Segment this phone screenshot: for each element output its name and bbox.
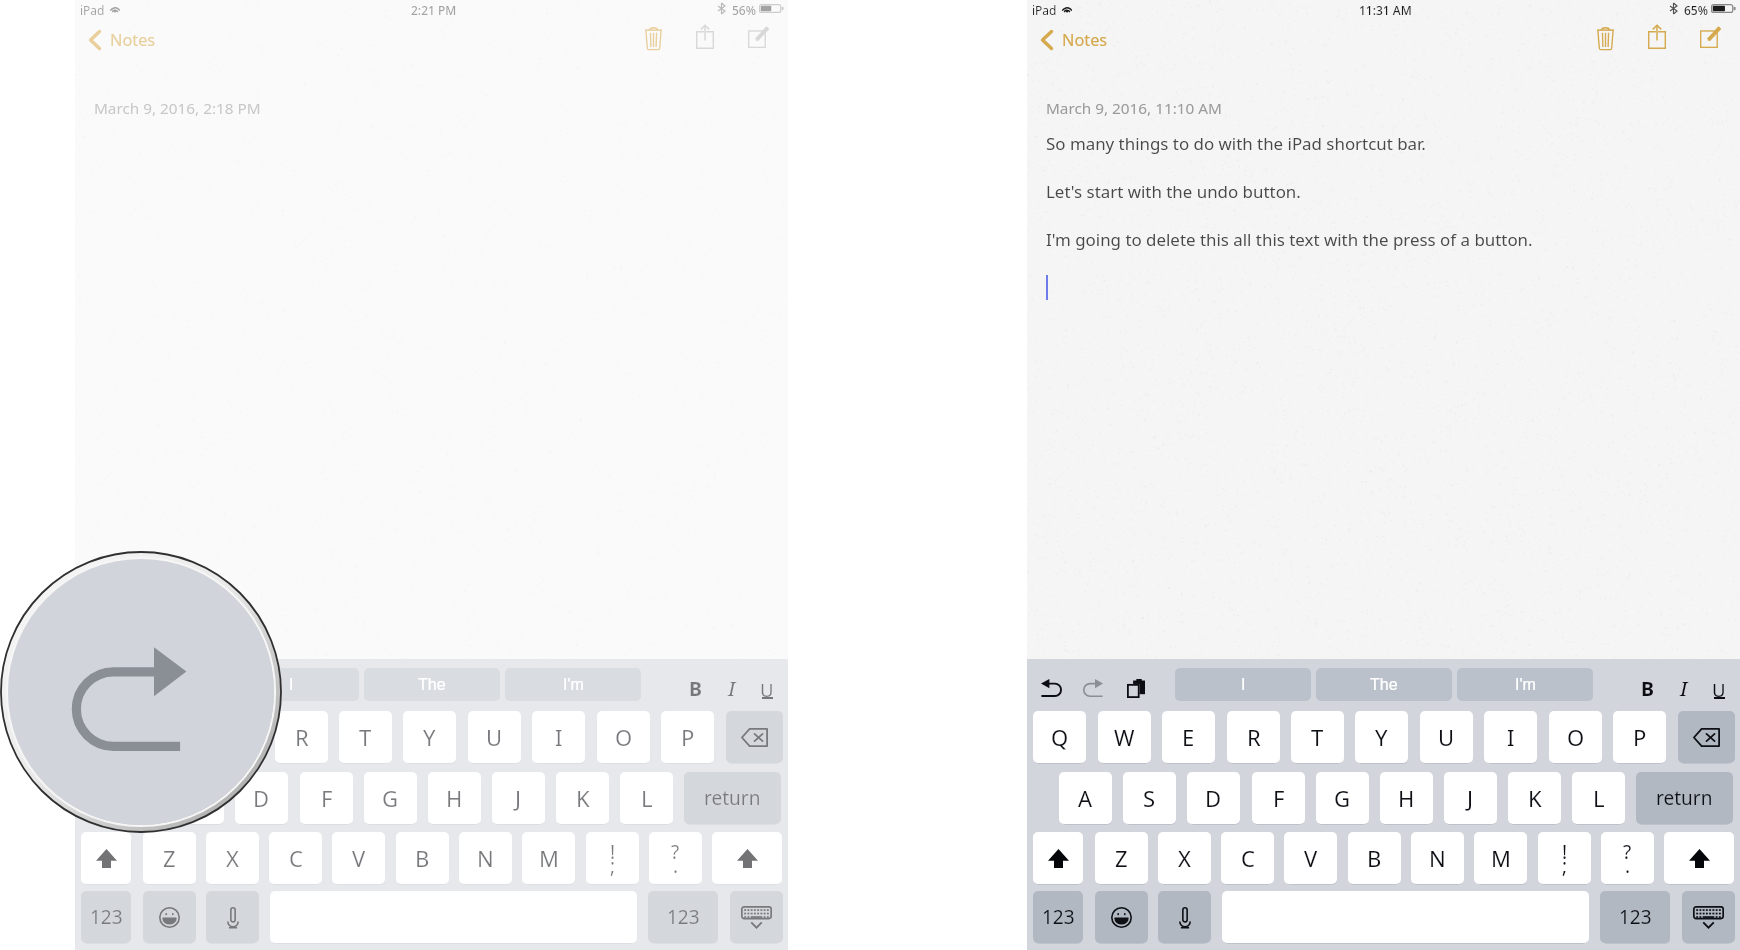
button[interactable]: V — [332, 832, 385, 884]
button[interactable]: E — [210, 711, 263, 763]
button[interactable]: U — [468, 711, 521, 763]
button[interactable]: Shift — [1664, 832, 1734, 884]
button[interactable]: T — [1291, 711, 1344, 763]
button[interactable]: Shift — [81, 832, 131, 884]
button[interactable]: I — [1664, 668, 1704, 708]
button[interactable]: Dictate — [206, 891, 259, 943]
button[interactable]: return — [1636, 772, 1733, 824]
button[interactable]: X — [206, 832, 259, 884]
button[interactable]: E — [1162, 711, 1215, 763]
button[interactable]: Dictate — [1158, 891, 1211, 943]
button[interactable]: ? — [1601, 832, 1654, 884]
button[interactable]: ! — [586, 832, 639, 884]
button[interactable]: Redo — [1073, 668, 1113, 708]
button[interactable]: Paste — [1116, 668, 1156, 708]
button[interactable]: W — [146, 711, 199, 763]
button[interactable]: F — [300, 772, 353, 824]
button[interactable]: L — [1572, 772, 1625, 824]
button[interactable]: 123 — [1600, 891, 1670, 943]
button[interactable]: N — [459, 832, 512, 884]
button[interactable]: The — [1316, 668, 1452, 701]
button[interactable]: 123 — [81, 891, 131, 943]
button[interactable]: G — [1316, 772, 1369, 824]
button[interactable]: H — [428, 772, 481, 824]
button[interactable]: Hide keyboard — [1682, 891, 1735, 943]
button[interactable]: I — [1175, 668, 1311, 701]
button[interactable]: K — [556, 772, 609, 824]
button[interactable]: I'm — [1457, 668, 1593, 701]
button[interactable]: Undo — [1031, 668, 1071, 708]
button[interactable]: Compose — [737, 17, 779, 57]
button[interactable]: C — [269, 832, 322, 884]
button[interactable]: D — [1187, 772, 1240, 824]
button[interactable]: Share — [1636, 17, 1678, 57]
button[interactable]: K — [1508, 772, 1561, 824]
button[interactable]: I — [532, 711, 585, 763]
button[interactable]: Shift — [712, 832, 782, 884]
button[interactable]: B — [396, 832, 449, 884]
button[interactable]: P — [661, 711, 714, 763]
button[interactable]: P — [1613, 711, 1666, 763]
button[interactable]: G — [364, 772, 417, 824]
button[interactable]: ! — [1538, 832, 1591, 884]
button[interactable]: I — [1484, 711, 1537, 763]
button[interactable]: R — [275, 711, 328, 763]
button[interactable]: O — [597, 711, 650, 763]
button[interactable]: I — [712, 668, 752, 708]
button[interactable]: Compose — [1689, 17, 1731, 57]
button[interactable]: B — [675, 668, 715, 708]
button[interactable]: C — [1221, 832, 1274, 884]
button[interactable]: S — [171, 772, 224, 824]
button[interactable]: B — [1348, 832, 1401, 884]
button[interactable]: F — [1252, 772, 1305, 824]
button[interactable]: J — [492, 772, 545, 824]
button[interactable]: L — [620, 772, 673, 824]
button[interactable]: The — [364, 668, 500, 701]
button[interactable]: U — [1699, 668, 1739, 708]
button[interactable]: 123 — [1033, 891, 1083, 943]
button[interactable]: D — [235, 772, 288, 824]
button[interactable]: A — [1059, 772, 1112, 824]
button[interactable]: H — [1380, 772, 1433, 824]
button[interactable]: Share — [684, 17, 726, 57]
button[interactable]: X — [1158, 832, 1211, 884]
button[interactable]: S — [1123, 772, 1176, 824]
button[interactable]: Emoji — [143, 891, 196, 943]
button[interactable]: Q — [1033, 711, 1086, 763]
button[interactable]: U — [747, 668, 787, 708]
button[interactable]: I — [223, 668, 359, 701]
button[interactable]: N — [1411, 832, 1464, 884]
button[interactable]: Z — [1095, 832, 1148, 884]
button[interactable]: M — [522, 832, 575, 884]
button[interactable]: ? — [649, 832, 702, 884]
button[interactable]: Delete — [632, 18, 674, 58]
button[interactable]: Hide keyboard — [730, 891, 783, 943]
button[interactable]: Backspace — [726, 711, 783, 763]
button[interactable]: Y — [1355, 711, 1408, 763]
button[interactable]: return — [684, 772, 781, 824]
button[interactable]: 123 — [648, 891, 718, 943]
button[interactable]: T — [339, 711, 392, 763]
staticText: Y — [423, 722, 436, 752]
button[interactable]: W — [1098, 711, 1151, 763]
button[interactable]: O — [1549, 711, 1602, 763]
button[interactable]: Y — [403, 711, 456, 763]
button[interactable]: Q — [81, 711, 134, 763]
button[interactable]: Backspace — [1678, 711, 1735, 763]
button[interactable]: Emoji — [1095, 891, 1148, 943]
button[interactable]: J — [1444, 772, 1497, 824]
button[interactable]: M — [1474, 832, 1527, 884]
button[interactable]: I'm — [505, 668, 641, 701]
button[interactable]: Notes — [1041, 20, 1108, 60]
button[interactable]: Z — [143, 832, 196, 884]
button[interactable]: B — [1627, 668, 1667, 708]
button[interactable]: V — [1284, 832, 1337, 884]
button[interactable]: R — [1227, 711, 1280, 763]
button[interactable]: Delete — [1584, 18, 1626, 58]
button[interactable]: Shift — [1033, 832, 1083, 884]
button[interactable]: Notes — [89, 20, 156, 60]
button[interactable]: U — [1420, 711, 1473, 763]
